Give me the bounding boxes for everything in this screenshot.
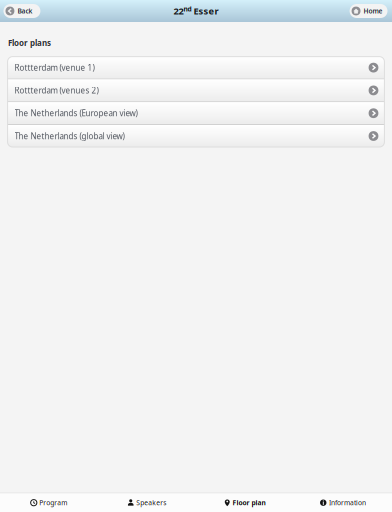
staticText: Floor plans	[8, 37, 51, 48]
button[interactable]: Speakers	[98, 493, 196, 512]
staticText: Floor plan	[232, 498, 265, 507]
staticText: nd	[183, 5, 191, 13]
staticText: Home	[363, 7, 382, 15]
button[interactable]: Rottterdam (venues 2)	[8, 79, 384, 102]
button[interactable]: Program	[0, 493, 98, 512]
button[interactable]: Rottterdam (venue 1)	[8, 57, 384, 79]
staticText: 22	[173, 5, 183, 17]
button[interactable]: Back	[3, 4, 40, 18]
button[interactable]: The Netherlands (European view)	[8, 102, 384, 125]
staticText: Back	[17, 7, 32, 15]
button[interactable]: The Netherlands (global view)	[8, 125, 384, 147]
staticText: The Netherlands (global view)	[15, 131, 125, 141]
staticText: The Netherlands (European view)	[15, 108, 138, 118]
staticText: Rottterdam (venues 2)	[15, 85, 99, 96]
staticText: Speakers	[136, 498, 166, 507]
staticText: Program	[39, 498, 67, 507]
button[interactable]: Home	[350, 4, 387, 18]
staticText: Esser	[191, 5, 218, 17]
button[interactable]: Information	[294, 493, 392, 512]
staticText: Information	[329, 498, 366, 507]
button[interactable]: Floor plan	[196, 493, 294, 512]
staticText: Rottterdam (venue 1)	[15, 62, 95, 73]
